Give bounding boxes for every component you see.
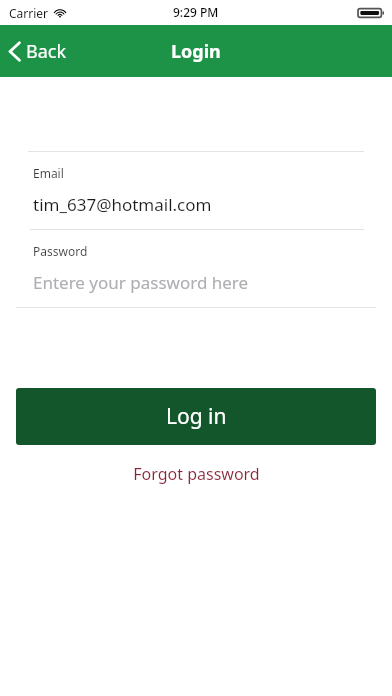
staticText: tim_637@hotmail.com	[33, 193, 212, 216]
staticText: Password	[33, 243, 88, 259]
staticText: Log in	[166, 402, 227, 431]
staticText: 9:29 PM	[173, 4, 219, 20]
button[interactable]: Email	[0, 152, 392, 229]
staticText: Back	[26, 39, 67, 64]
staticText: Forgot password	[133, 463, 260, 485]
button[interactable]: Log in	[16, 388, 376, 445]
staticText: Login	[171, 39, 221, 64]
button[interactable]: Back	[0, 33, 79, 70]
staticText: Carrier	[9, 5, 49, 21]
button[interactable]: Forgot password	[117, 457, 276, 491]
staticText: Email	[33, 165, 64, 181]
button[interactable]: Password	[0, 230, 392, 307]
staticText: Entere your password here	[33, 271, 249, 294]
